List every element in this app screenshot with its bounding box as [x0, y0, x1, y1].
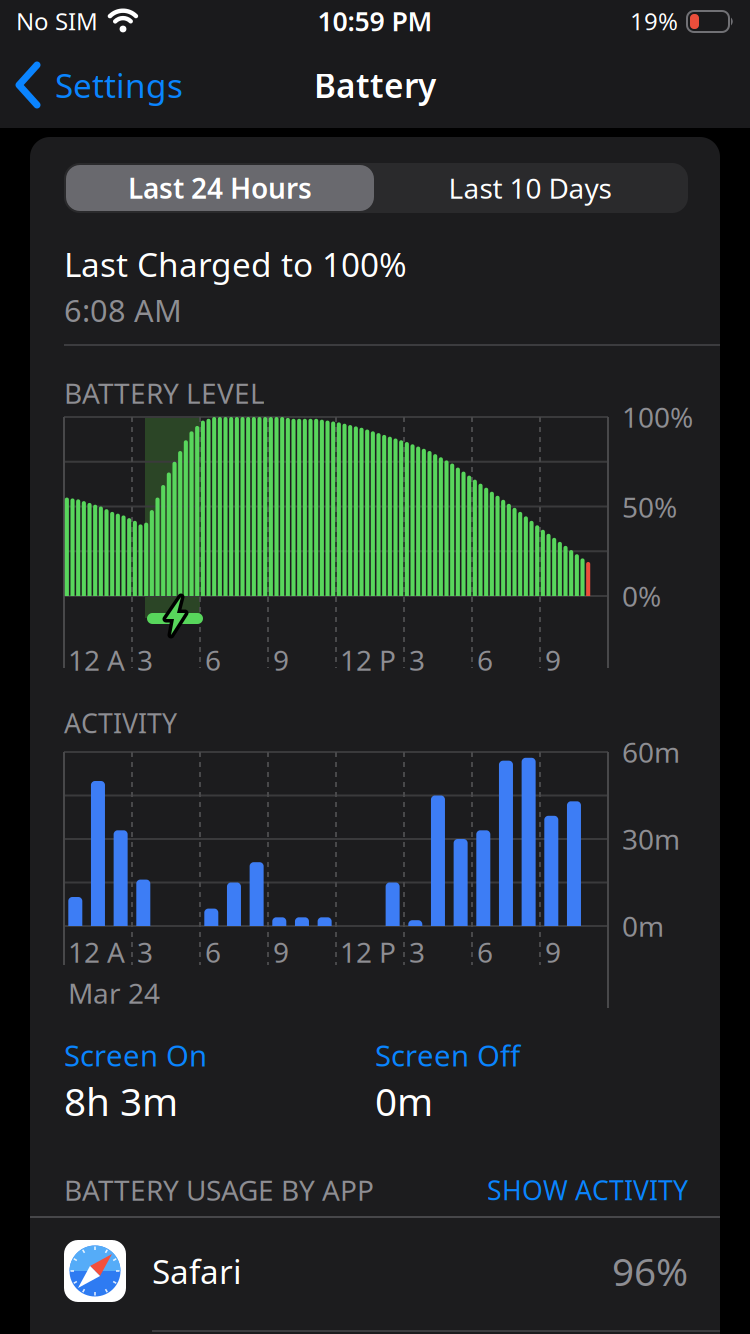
staticText: 9: [545, 933, 561, 971]
staticText: SHOW ACTIVITY: [487, 1172, 688, 1208]
button[interactable]: Last 24 Hours: [66, 165, 374, 211]
staticText: Last 10 Days: [448, 169, 611, 207]
button[interactable]: Last 10 Days: [376, 165, 684, 211]
staticText: 19%: [630, 5, 678, 37]
staticText: 6: [205, 933, 221, 971]
staticText: 100%: [622, 398, 693, 436]
staticText: Screen Off: [375, 1035, 520, 1074]
staticText: 9: [545, 641, 561, 679]
staticText: BATTERY USAGE BY APP: [64, 1171, 374, 1209]
button[interactable]: Settings: [8, 53, 218, 117]
staticText: 9: [273, 641, 289, 679]
button[interactable]: Safari: [30, 1228, 720, 1314]
staticText: 6: [477, 641, 493, 679]
staticText: 6: [477, 933, 493, 971]
staticText: 30m: [622, 820, 680, 858]
staticText: Safari: [152, 1249, 242, 1293]
staticText: 0m: [375, 1075, 433, 1127]
staticText: 12 A: [68, 933, 125, 971]
staticText: 50%: [622, 488, 677, 526]
staticText: Last 24 Hours: [128, 169, 312, 207]
staticText: 8h 3m: [64, 1075, 178, 1127]
staticText: Settings: [55, 63, 183, 107]
staticText: 9: [273, 933, 289, 971]
staticText: BATTERY LEVEL: [64, 374, 265, 412]
staticText: Battery: [314, 63, 436, 107]
staticText: 6:08 AM: [64, 290, 182, 330]
staticText: 3: [137, 641, 153, 679]
staticText: Last Charged to 100%: [64, 242, 407, 286]
button[interactable]: SHOW ACTIVITY: [408, 1170, 688, 1210]
staticText: Screen On: [64, 1035, 207, 1074]
staticText: ACTIVITY: [64, 705, 177, 741]
staticText: 0%: [622, 577, 661, 615]
staticText: 60m: [622, 733, 680, 771]
staticText: 96%: [612, 1245, 688, 1297]
staticText: 3: [409, 933, 425, 971]
staticText: 10:59 PM: [317, 3, 432, 39]
staticText: 12 P: [340, 641, 396, 679]
staticText: No SIM: [16, 5, 98, 37]
staticText: 3: [409, 641, 425, 679]
staticText: 12 A: [68, 641, 125, 679]
staticText: 3: [137, 933, 153, 971]
staticText: 12 P: [340, 933, 396, 971]
staticText: 0m: [622, 907, 664, 945]
staticText: Mar 24: [68, 974, 160, 1012]
staticText: 6: [205, 641, 221, 679]
